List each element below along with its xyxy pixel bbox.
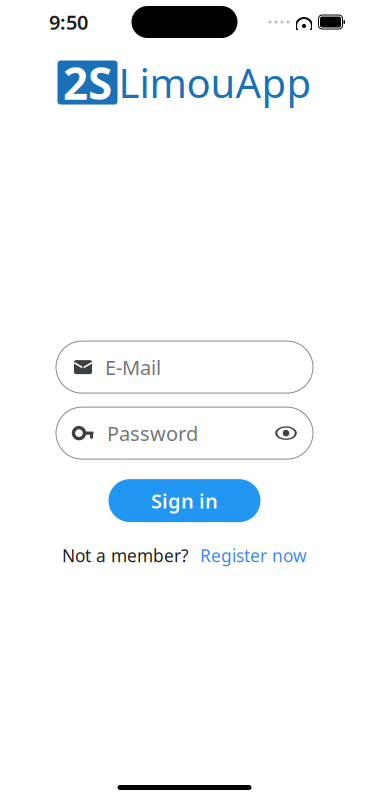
button[interactable]: Register now [200, 544, 307, 567]
staticText: 9:50 [49, 9, 88, 35]
staticText: LimouApp [118, 56, 311, 109]
button[interactable]: Sign in [108, 479, 260, 522]
staticText: Not a member? [62, 544, 189, 567]
staticText: E-Mail [105, 354, 161, 380]
staticText: Password [107, 420, 198, 446]
staticText: Register now [200, 544, 307, 567]
staticText: 2S [63, 53, 112, 112]
staticText: Sign in [151, 487, 218, 514]
button[interactable]: Show password [269, 416, 303, 450]
